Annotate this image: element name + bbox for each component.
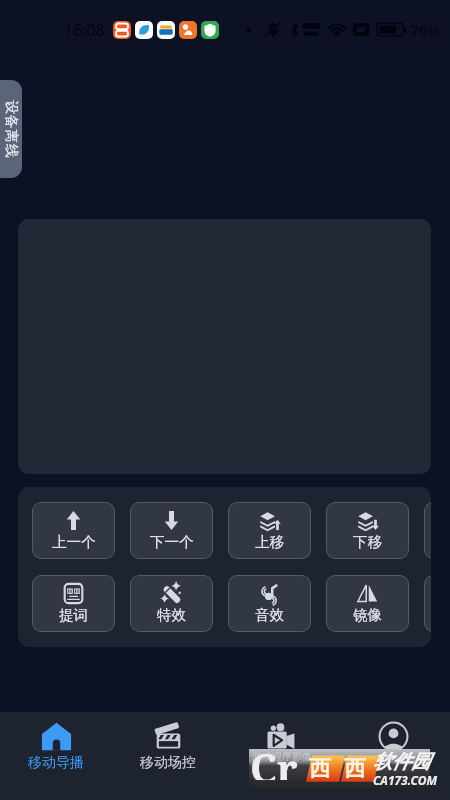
staticText: Cr	[250, 740, 298, 780]
button[interactable]: 移动场控	[112, 712, 224, 800]
staticText: 软件园	[373, 750, 430, 774]
staticText: 16:08	[64, 19, 105, 41]
button[interactable]: 移动导播	[224, 712, 337, 800]
staticText: CA173.COM	[373, 772, 438, 788]
staticText: 镜像	[353, 606, 382, 624]
staticText: 上移	[255, 533, 284, 551]
button[interactable]: 移动导播	[0, 712, 112, 800]
staticText: 移动场控	[140, 754, 196, 772]
staticText: 个人中心	[366, 754, 422, 772]
staticText: 音效	[255, 606, 284, 624]
staticText: 76%	[410, 20, 440, 40]
button[interactable]: 裁剪	[424, 502, 431, 559]
staticText: 移动导播	[253, 754, 309, 772]
staticText: 下移	[353, 533, 382, 551]
button[interactable]: 提词	[32, 575, 115, 632]
staticText: 移动导播	[28, 754, 84, 772]
button[interactable]: 滤镜	[424, 575, 431, 632]
staticText: 下一个	[150, 533, 194, 551]
button[interactable]: 上一个	[32, 502, 115, 559]
staticText: 上一个	[52, 533, 96, 551]
staticText: 游戏程序影像	[252, 750, 312, 763]
staticText: 西	[309, 755, 331, 783]
button[interactable]: 上移	[228, 502, 311, 559]
button[interactable]: 个人中心	[337, 712, 450, 800]
staticText: 设备离线	[2, 100, 20, 158]
staticText: 西	[344, 755, 366, 783]
button[interactable]: 音效	[228, 575, 311, 632]
staticText: 提词	[59, 606, 88, 624]
staticText: 特效	[157, 606, 186, 624]
button[interactable]: 镜像	[326, 575, 409, 632]
button[interactable]: 设备离线	[0, 80, 22, 178]
button[interactable]: 特效	[130, 575, 213, 632]
button[interactable]: 下一个	[130, 502, 213, 559]
button[interactable]: 下移	[326, 502, 409, 559]
